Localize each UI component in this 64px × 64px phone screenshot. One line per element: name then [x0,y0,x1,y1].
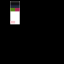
button[interactable]: Open [0,0,64,64]
